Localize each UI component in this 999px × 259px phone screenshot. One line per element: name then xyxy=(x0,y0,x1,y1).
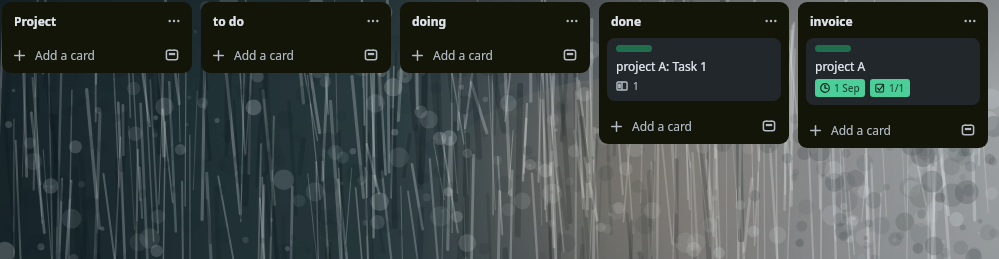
button[interactable]: 1/1 xyxy=(870,79,910,97)
button[interactable]: List actions for Project xyxy=(164,11,184,31)
button[interactable]: 1 Sep xyxy=(815,79,865,97)
button[interactable]: to do xyxy=(201,2,391,38)
button[interactable]: doing xyxy=(400,2,590,38)
button[interactable]: invoice xyxy=(798,2,988,38)
button[interactable]: Create card from template xyxy=(163,46,181,64)
staticText: doing xyxy=(412,13,562,29)
button[interactable]: Create card from template xyxy=(760,117,778,135)
staticText: Add a card xyxy=(433,47,561,63)
button[interactable]: done xyxy=(599,2,789,38)
button[interactable]: project A xyxy=(806,38,980,105)
staticText: invoice xyxy=(810,13,960,29)
staticText: 1 Sep xyxy=(834,81,860,95)
button[interactable]: Add a card xyxy=(599,109,789,144)
staticText: 1/1 xyxy=(889,81,905,95)
staticText: Add a card xyxy=(35,47,163,63)
button[interactable]: Add a card xyxy=(2,38,192,73)
button[interactable]: Create card from template xyxy=(959,121,977,139)
button[interactable]: Create card from template xyxy=(362,46,380,64)
staticText: Add a card xyxy=(632,118,760,134)
staticText: project A: Task 1 xyxy=(616,58,708,74)
staticText: to do xyxy=(213,13,363,29)
button[interactable]: Add a card xyxy=(798,113,988,148)
button[interactable]: List actions for doing xyxy=(562,11,582,31)
staticText: project A xyxy=(815,58,866,74)
staticText: Add a card xyxy=(831,122,959,138)
staticText: done xyxy=(611,13,761,29)
button[interactable]: Project xyxy=(2,2,192,38)
button[interactable]: List actions for invoice xyxy=(960,11,980,31)
button[interactable]: Add a card xyxy=(400,38,590,73)
button[interactable]: List actions for done xyxy=(761,11,781,31)
button[interactable]: Create card from template xyxy=(561,46,579,64)
staticText: 1 xyxy=(633,79,639,93)
staticText: Project xyxy=(14,13,164,29)
staticText: Add a card xyxy=(234,47,362,63)
button[interactable]: project A: Task 1 xyxy=(607,38,781,101)
button[interactable]: List actions for to do xyxy=(363,11,383,31)
button[interactable]: Add a card xyxy=(201,38,391,73)
